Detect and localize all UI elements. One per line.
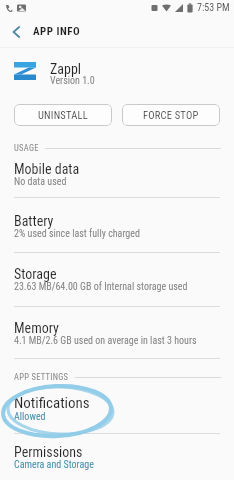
- staticText: Storage: [14, 266, 57, 282]
- staticText: Battery: [14, 213, 54, 229]
- button[interactable]: Permissions: [0, 444, 234, 480]
- staticText: Camera and Storage: [14, 459, 94, 471]
- staticText: Version 1.0: [50, 75, 95, 87]
- staticText: Zappl: [50, 61, 82, 77]
- staticText: 2% used since last fully charged: [14, 228, 140, 240]
- staticText: UNINSTALL: [38, 109, 88, 121]
- button[interactable]: Mobile data: [0, 161, 234, 205]
- button[interactable]: Battery: [0, 213, 234, 257]
- staticText: Notifications: [14, 394, 90, 412]
- staticText: APP SETTINGS: [14, 372, 69, 382]
- staticText: FORCE STOP: [143, 109, 199, 121]
- staticText: 7:53 PM: [197, 2, 230, 14]
- staticText: Allowed: [14, 411, 46, 423]
- button[interactable]: Storage: [0, 266, 234, 310]
- staticText: USAGE: [14, 143, 39, 153]
- button[interactable]: Memory: [0, 320, 234, 364]
- button[interactable]: FORCE STOP: [122, 104, 220, 126]
- staticText: Permissions: [14, 444, 83, 460]
- button[interactable]: Notifications: [0, 394, 234, 438]
- staticText: 4.1 MB/2.6 GB used on average in last 3 …: [14, 335, 197, 347]
- staticText: Memory: [14, 320, 59, 336]
- staticText: APP INFO: [33, 25, 81, 38]
- button[interactable]: UNINSTALL: [14, 104, 112, 126]
- button[interactable]: [12, 26, 21, 38]
- staticText: No data used: [14, 176, 67, 188]
- staticText: Mobile data: [14, 161, 80, 177]
- staticText: 23.63 MB/64.00 GB of Internal storage us…: [14, 281, 188, 293]
